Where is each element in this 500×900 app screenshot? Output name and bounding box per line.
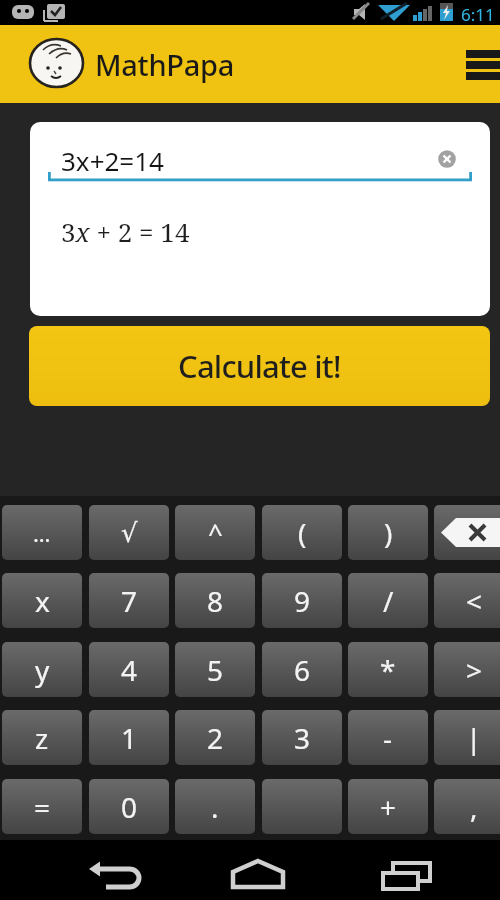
button[interactable]: =	[2, 779, 82, 834]
staticText: y	[35, 651, 50, 689]
staticText: ,	[470, 788, 478, 826]
button[interactable]: >	[434, 642, 500, 697]
button[interactable]: -	[348, 710, 428, 765]
staticText: .	[211, 788, 219, 826]
staticText: 2	[207, 719, 224, 757]
button[interactable]: 5	[175, 642, 255, 697]
staticText: 8	[207, 582, 224, 620]
staticText: =	[34, 788, 51, 826]
button[interactable]: ,	[434, 779, 500, 834]
button[interactable]	[458, 44, 500, 84]
staticText: >	[466, 651, 483, 689]
button[interactable]: ^	[175, 505, 255, 560]
button[interactable]: x	[2, 573, 82, 628]
staticText: +	[380, 788, 397, 826]
staticText: z	[35, 719, 49, 757]
button[interactable]: 2	[175, 710, 255, 765]
button[interactable]	[262, 779, 342, 834]
button[interactable]	[434, 505, 500, 560]
staticText: 5	[207, 651, 224, 689]
button[interactable]: |	[434, 710, 500, 765]
staticText: 0	[121, 788, 138, 826]
button[interactable]: 4	[89, 642, 169, 697]
staticText: -	[383, 719, 393, 757]
button[interactable]: 8	[175, 573, 255, 628]
staticText: 3x + 2 = 14	[61, 214, 190, 249]
staticText: Calculate it!	[178, 345, 341, 387]
staticText: )	[384, 514, 393, 552]
button[interactable]: 7	[89, 573, 169, 628]
staticText: 9	[294, 582, 311, 620]
button[interactable]: …	[2, 505, 82, 560]
staticText: 3x+2=14	[61, 143, 164, 178]
button[interactable]: *	[348, 642, 428, 697]
button[interactable]: 9	[262, 573, 342, 628]
staticText: 4	[121, 651, 138, 689]
staticText: MathPapa	[95, 45, 234, 84]
button[interactable]: <	[434, 573, 500, 628]
button[interactable]: 6	[262, 642, 342, 697]
staticText: x	[35, 582, 50, 620]
button[interactable]: y	[2, 642, 82, 697]
staticText: /	[383, 582, 394, 620]
staticText: …	[33, 518, 51, 548]
staticText: 6	[294, 651, 311, 689]
button[interactable]: z	[2, 710, 82, 765]
staticText: <	[466, 582, 483, 620]
staticText: ^	[208, 515, 223, 550]
button[interactable]: .	[175, 779, 255, 834]
staticText: 6:11	[461, 3, 495, 26]
button[interactable]: /	[348, 573, 428, 628]
button[interactable]: )	[348, 505, 428, 560]
button[interactable]: (	[262, 505, 342, 560]
staticText: 7	[121, 582, 138, 620]
staticText: 3	[294, 719, 311, 757]
button[interactable]: 1	[89, 710, 169, 765]
staticText: *	[380, 651, 396, 689]
button[interactable]: 0	[89, 779, 169, 834]
button[interactable]	[436, 148, 458, 170]
button[interactable]	[218, 845, 298, 895]
button[interactable]: Calculate it!	[29, 326, 490, 406]
button[interactable]	[80, 845, 160, 895]
button[interactable]: 3	[262, 710, 342, 765]
staticText: |	[466, 719, 482, 757]
staticText: (	[298, 514, 307, 552]
staticText: √	[121, 518, 138, 548]
staticText: 1	[121, 719, 138, 757]
button[interactable]	[368, 845, 448, 895]
button[interactable]: √	[89, 505, 169, 560]
button[interactable]: +	[348, 779, 428, 834]
